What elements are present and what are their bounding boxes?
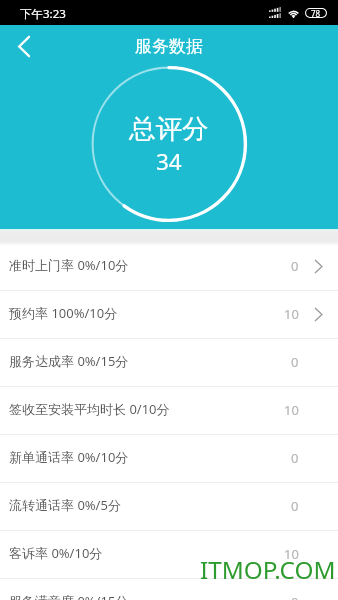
staticText: 0 [291, 353, 299, 371]
staticText: 10 [284, 401, 299, 419]
staticText: 服务满意度 0%/15分 [9, 592, 129, 600]
staticText: 0 [291, 449, 299, 467]
staticText: 10 [284, 545, 299, 563]
button[interactable]: 签收至安装平均时长 0/10分 [0, 387, 338, 435]
staticText: 0 [291, 257, 299, 275]
staticText: 服务达成率 0%/15分 [9, 352, 129, 370]
staticText: ITMOP.COM [200, 553, 336, 586]
button[interactable]: 新单通话率 0%/10分 [0, 435, 338, 483]
staticText: 0 [291, 593, 299, 600]
button[interactable]: 准时上门率 0%/10分 [0, 243, 338, 291]
button[interactable]: 预约率 100%/10分 [0, 291, 338, 339]
staticText: 10 [284, 305, 299, 323]
button[interactable]: 服务达成率 0%/15分 [0, 339, 338, 387]
staticText: 新单通话率 0%/10分 [9, 448, 129, 466]
staticText: 总评分 [129, 112, 209, 145]
button[interactable]: 服务满意度 0%/15分 [0, 579, 338, 600]
staticText: 预约率 100%/10分 [9, 304, 118, 322]
staticText: 服务数据 [135, 36, 203, 57]
staticText: 签收至安装平均时长 0/10分 [9, 400, 170, 418]
button[interactable]: 客诉率 0%/10分 [0, 531, 338, 579]
staticText: 下午3:23 [20, 6, 66, 22]
button[interactable]: 流转通话率 0%/5分 [0, 483, 338, 531]
button[interactable]: Back [0, 25, 48, 67]
staticText: 准时上门率 0%/10分 [9, 256, 129, 274]
staticText: 流转通话率 0%/5分 [9, 496, 121, 514]
staticText: 客诉率 0%/10分 [9, 544, 103, 562]
staticText: 0 [291, 497, 299, 515]
staticText: 34 [156, 146, 182, 177]
staticText: 78 [311, 8, 321, 18]
